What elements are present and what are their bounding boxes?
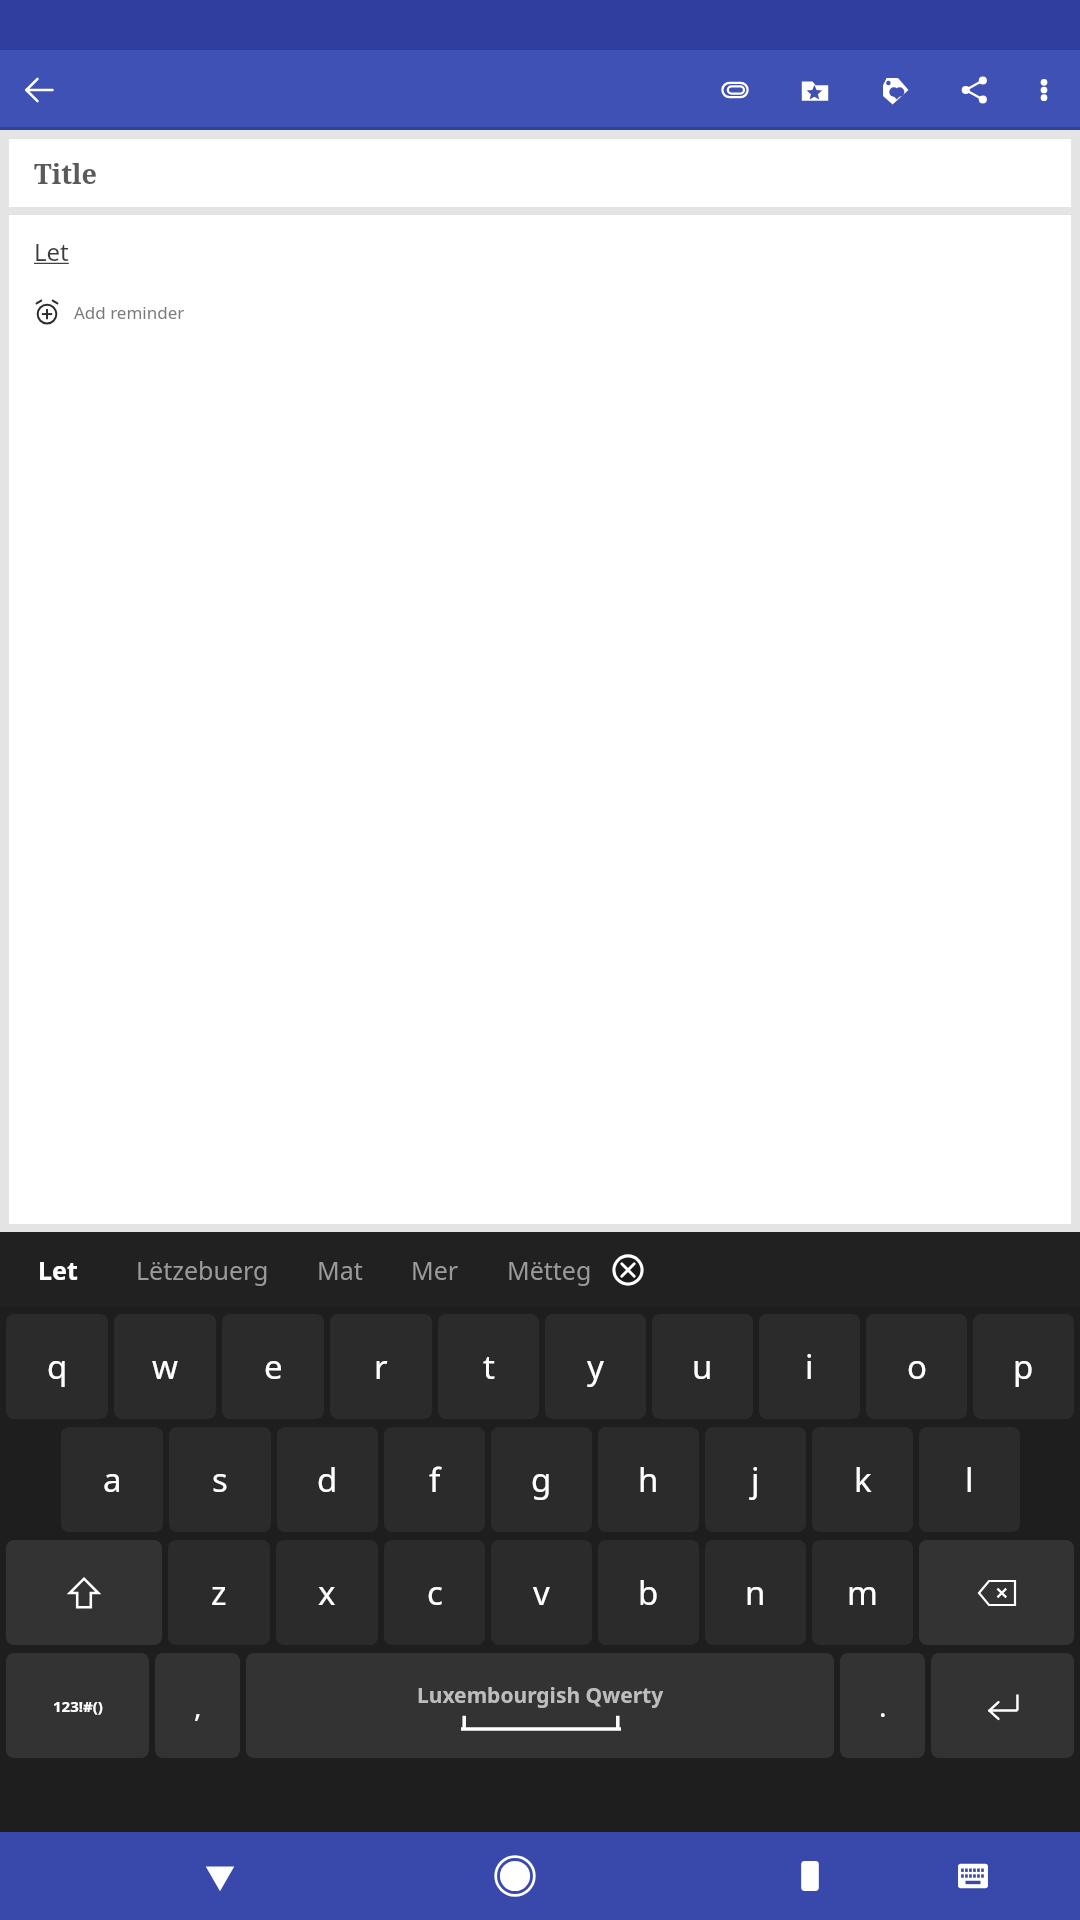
staticText: Mer: [411, 1253, 459, 1287]
staticText: Add reminder: [74, 301, 185, 324]
staticText: d: [317, 1457, 338, 1502]
staticText: h: [638, 1457, 659, 1502]
button[interactable]: k: [812, 1427, 913, 1532]
button[interactable]: Title: [9, 139, 1071, 207]
button[interactable]: Add reminder: [34, 295, 185, 329]
button[interactable]: f: [384, 1427, 485, 1532]
button[interactable]: r: [330, 1314, 432, 1419]
button[interactable]: m: [812, 1540, 913, 1645]
button[interactable]: Attach: [706, 61, 764, 119]
staticText: o: [907, 1344, 927, 1389]
staticText: g: [531, 1457, 552, 1502]
staticText: a: [103, 1457, 122, 1502]
button[interactable]: Shift: [6, 1540, 162, 1645]
button[interactable]: Mëtteg: [507, 1253, 592, 1287]
button[interactable]: Lëtzebuerg: [136, 1253, 269, 1287]
staticText: r: [374, 1344, 388, 1389]
button[interactable]: Mer: [411, 1253, 459, 1287]
staticText: n: [745, 1570, 766, 1615]
button[interactable]: p: [973, 1314, 1074, 1419]
staticText: j: [751, 1457, 760, 1502]
staticText: .: [879, 1687, 887, 1725]
button[interactable]: More options: [1018, 64, 1070, 116]
button[interactable]: Backspace: [919, 1540, 1074, 1645]
button[interactable]: h: [598, 1427, 699, 1532]
button[interactable]: Let: [9, 215, 1071, 1224]
staticText: Mat: [317, 1253, 363, 1287]
staticText: s: [212, 1457, 228, 1502]
button[interactable]: g: [491, 1427, 592, 1532]
staticText: f: [429, 1457, 441, 1502]
staticText: t: [483, 1344, 495, 1389]
staticText: z: [211, 1570, 227, 1615]
staticText: i: [805, 1344, 814, 1389]
button[interactable]: l: [919, 1427, 1020, 1532]
button[interactable]: c: [384, 1540, 485, 1645]
staticText: e: [264, 1344, 283, 1389]
button[interactable]: Period: [840, 1653, 925, 1758]
button[interactable]: o: [866, 1314, 967, 1419]
button[interactable]: s: [169, 1427, 271, 1532]
staticText: Mëtteg: [507, 1253, 592, 1287]
button[interactable]: u: [652, 1314, 753, 1419]
button[interactable]: a: [61, 1427, 163, 1532]
staticText: w: [152, 1344, 178, 1389]
button[interactable]: b: [598, 1540, 699, 1645]
button[interactable]: Close suggestions: [606, 1248, 650, 1292]
button[interactable]: d: [277, 1427, 378, 1532]
staticText: 123!#(): [53, 1696, 103, 1716]
button[interactable]: Tag: [866, 61, 924, 119]
staticText: x: [318, 1570, 336, 1615]
button[interactable]: Symbols: [6, 1653, 149, 1758]
staticText: p: [1013, 1344, 1034, 1389]
staticText: Let: [34, 235, 69, 268]
staticText: c: [427, 1570, 443, 1615]
button[interactable]: t: [438, 1314, 539, 1419]
staticText: Title: [34, 155, 98, 192]
staticText: q: [47, 1344, 68, 1389]
button[interactable]: Share: [946, 61, 1004, 119]
button[interactable]: w: [114, 1314, 216, 1419]
button[interactable]: Let: [38, 1253, 78, 1287]
button[interactable]: Space: [246, 1653, 834, 1758]
button[interactable]: Hide keyboard: [184, 1840, 256, 1912]
staticText: k: [854, 1457, 872, 1502]
staticText: ,: [194, 1687, 202, 1725]
staticText: l: [965, 1457, 974, 1502]
button[interactable]: y: [545, 1314, 646, 1419]
button[interactable]: v: [491, 1540, 592, 1645]
staticText: b: [638, 1570, 659, 1615]
staticText: m: [847, 1570, 878, 1615]
button[interactable]: Enter: [931, 1653, 1074, 1758]
button[interactable]: e: [222, 1314, 324, 1419]
button[interactable]: Comma: [155, 1653, 240, 1758]
button[interactable]: Add to folder: [786, 61, 844, 119]
button[interactable]: Back: [10, 61, 68, 119]
button[interactable]: i: [759, 1314, 860, 1419]
staticText: y: [587, 1344, 604, 1389]
staticText: Let: [38, 1253, 78, 1287]
staticText: u: [692, 1344, 713, 1389]
staticText: Luxembourgish Qwerty: [417, 1681, 664, 1710]
button[interactable]: n: [705, 1540, 806, 1645]
button[interactable]: Recent apps: [774, 1840, 846, 1912]
staticText: v: [533, 1570, 550, 1615]
staticText: Lëtzebuerg: [136, 1253, 269, 1287]
button[interactable]: Home: [479, 1840, 551, 1912]
button[interactable]: j: [705, 1427, 806, 1532]
button[interactable]: x: [276, 1540, 378, 1645]
button[interactable]: z: [168, 1540, 270, 1645]
button[interactable]: Mat: [317, 1253, 363, 1287]
button[interactable]: Switch keyboard: [937, 1840, 1009, 1912]
button[interactable]: q: [6, 1314, 108, 1419]
